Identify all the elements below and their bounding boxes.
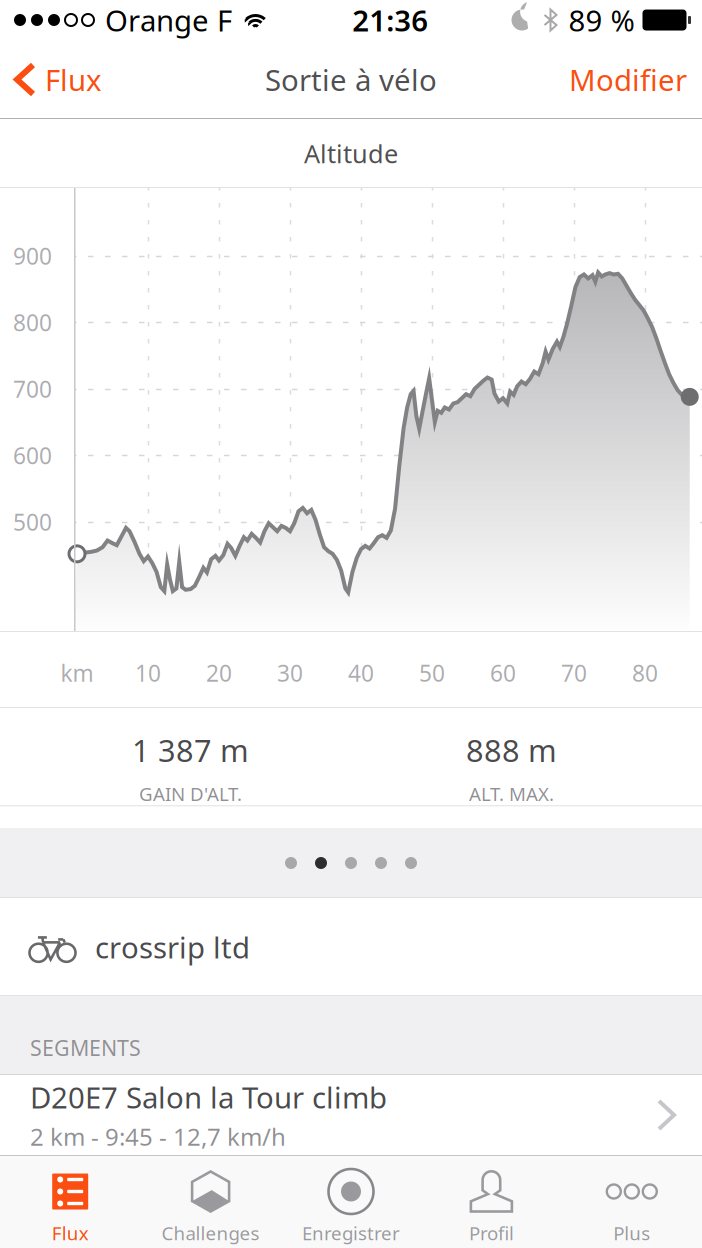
staticText: 10 [135,658,161,688]
button[interactable]: crossrip ltd [0,898,702,996]
staticText: Sortie à vélo [265,60,437,99]
staticText: Flux [52,1221,89,1245]
staticText: 80 [632,658,658,688]
staticText: Orange F [105,0,232,39]
staticText: Plus [613,1221,650,1245]
button[interactable]: Modifier [555,40,702,118]
staticText: 500 [13,507,52,537]
staticText: km [60,658,93,688]
staticText: crossrip ltd [95,927,250,966]
staticText: 89 % [568,0,634,39]
button[interactable]: Plus [562,1155,702,1248]
staticText: 888 m [466,730,557,770]
staticText: 1 387 m [132,730,249,770]
staticText: 60 [490,658,516,688]
staticText: 40 [348,658,374,688]
button[interactable]: D20E7 Salon la Tour climb [0,1075,702,1155]
staticText: 30 [277,658,303,688]
staticText: Profil [469,1221,514,1245]
staticText: Altitude [304,137,398,170]
staticText: ALT. MAX. [469,781,554,806]
button[interactable]: Enregistrer [281,1155,421,1248]
staticText: D20E7 Salon la Tour climb [30,1078,387,1117]
staticText: 800 [13,307,52,337]
staticText: GAIN D'ALT. [139,781,242,806]
staticText: Modifier [569,60,687,99]
staticText: Flux [45,60,102,99]
staticText: SEGMENTS [30,1034,141,1062]
button[interactable]: Challenges [140,1155,281,1248]
staticText: Enregistrer [302,1221,400,1245]
staticText: 700 [13,374,52,404]
staticText: 21:36 [352,0,428,39]
staticText: 20 [206,658,232,688]
staticText: 50 [419,658,445,688]
staticText: Challenges [162,1221,260,1245]
button[interactable]: Flux [0,1155,140,1248]
staticText: 600 [13,440,52,470]
button[interactable]: Flux [0,40,116,118]
staticText: 2 km - 9:45 - 12,7 km/h [30,1120,286,1152]
staticText: 70 [561,658,587,688]
button[interactable]: Profil [421,1155,562,1248]
staticText: 900 [13,241,52,271]
